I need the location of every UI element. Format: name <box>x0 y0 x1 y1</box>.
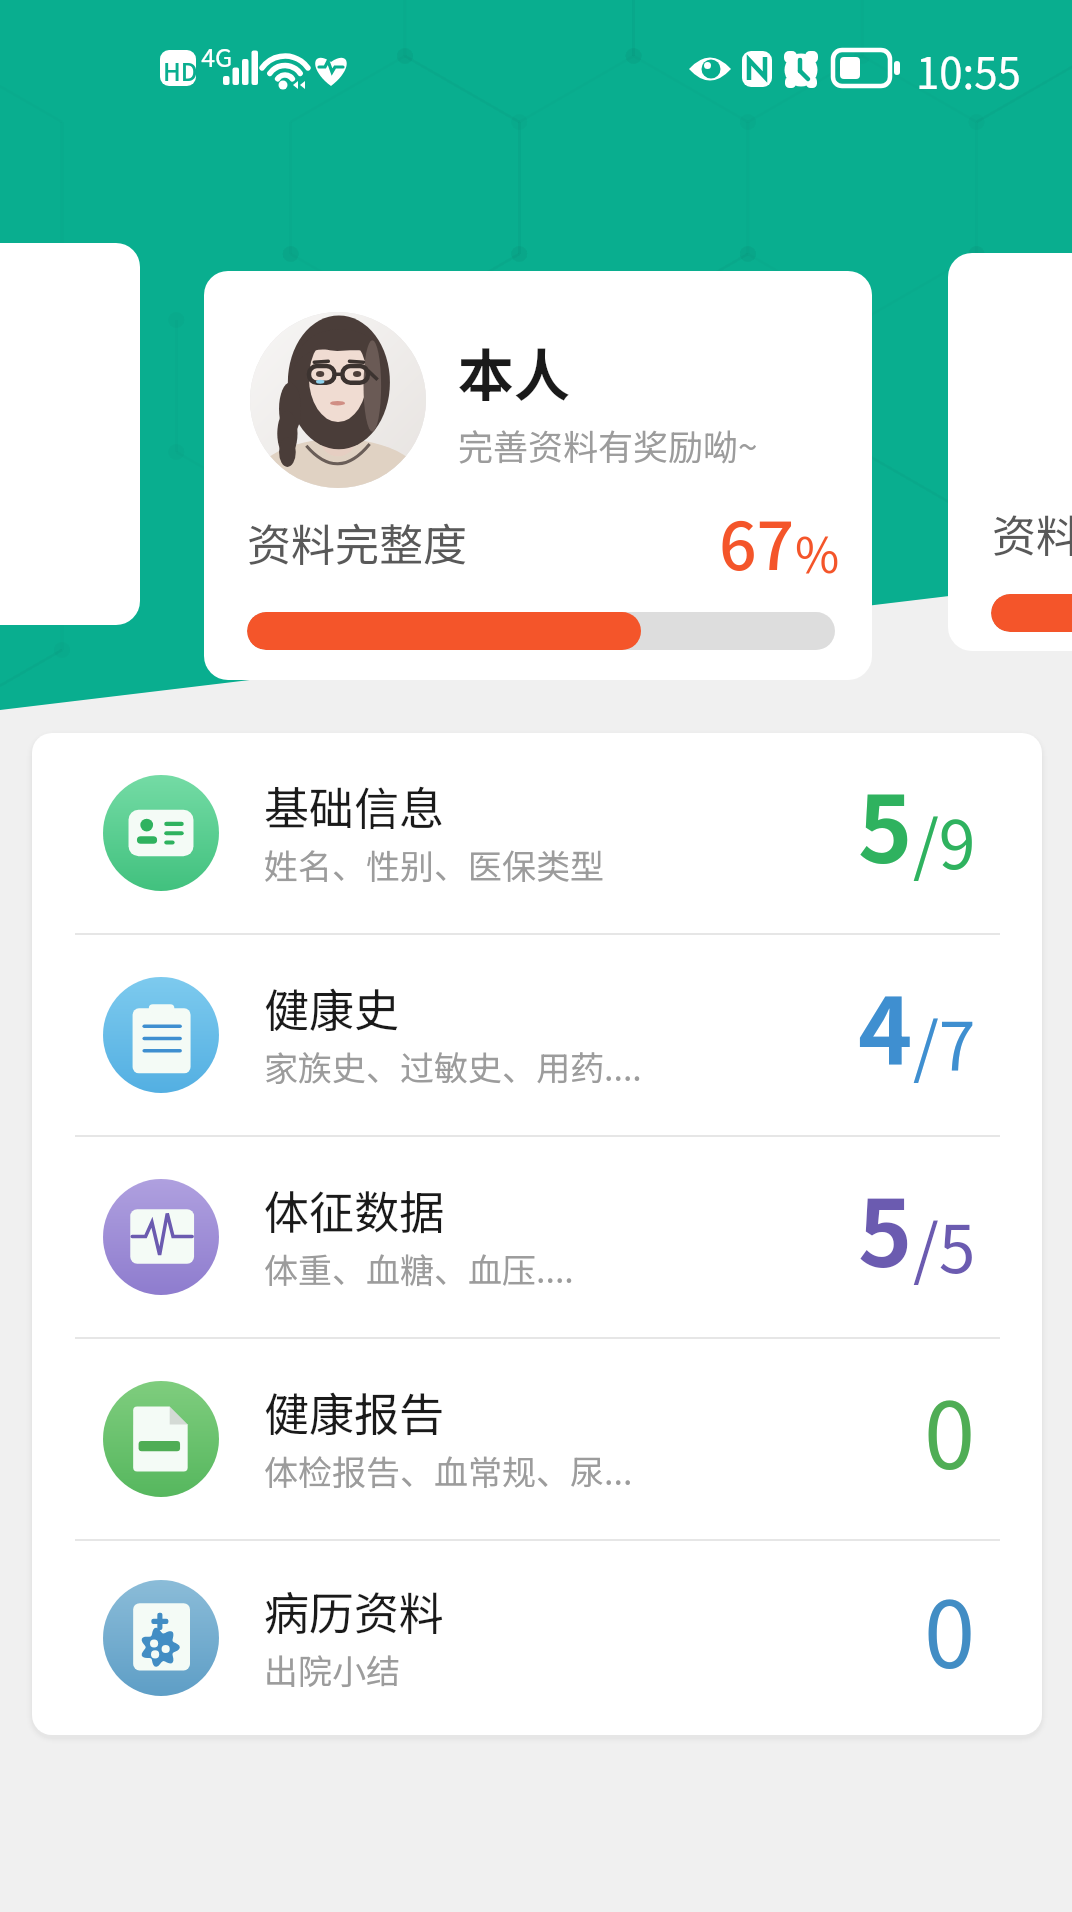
staticText: 基础信息 <box>264 773 445 838</box>
staticText: 0 <box>924 1362 976 1495</box>
staticText: 5 <box>858 756 913 889</box>
staticText: 体重、血糖、血压.... <box>264 1244 574 1293</box>
staticText: 4 <box>858 958 913 1091</box>
button[interactable]: 基础信息 <box>32 733 1042 933</box>
staticText: 完善资料有奖励呦~ <box>458 419 758 470</box>
staticText: /9 <box>913 792 976 888</box>
staticText: 健康报告 <box>264 1379 445 1444</box>
button[interactable]: 添加家人资料有奖励呦~ <box>0 243 140 625</box>
staticText: % <box>795 517 840 587</box>
staticText: 出院小结 <box>264 1645 400 1694</box>
staticText: 病历资料 <box>264 1578 445 1643</box>
button[interactable]: 健康史 <box>32 935 1042 1135</box>
button[interactable]: 病历资料 <box>32 1541 1042 1735</box>
button[interactable]: 体征数据 <box>32 1137 1042 1337</box>
staticText: 0 <box>924 1561 976 1694</box>
staticText: 资料完整度 <box>992 501 1072 565</box>
staticText: 67 <box>719 493 795 589</box>
staticText: 健康史 <box>264 975 400 1040</box>
button[interactable]: 健康报告 <box>32 1339 1042 1539</box>
staticText: 资料完整度 <box>247 510 467 574</box>
staticText: /5 <box>913 1196 976 1292</box>
staticText: 本人 <box>458 331 570 412</box>
staticText: HD <box>163 53 198 88</box>
staticText: 4G <box>201 38 233 74</box>
staticText: 姓名、性别、医保类型 <box>264 840 604 889</box>
staticText: 家族史、过敏史、用药.... <box>264 1042 642 1091</box>
button[interactable]: 本人 <box>204 271 872 680</box>
staticText: 体征数据 <box>264 1177 445 1242</box>
button[interactable]: 资料完整度 <box>948 253 1072 651</box>
staticText: 体检报告、血常规、尿... <box>264 1446 633 1495</box>
staticText: /7 <box>913 994 976 1090</box>
staticText: 10:55 <box>916 40 1021 101</box>
staticText: 5 <box>858 1160 913 1293</box>
